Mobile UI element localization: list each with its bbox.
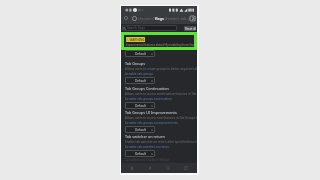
- staticText: Default: [135, 104, 146, 108]
- staticText: Default: [135, 52, 146, 56]
- staticText: Enable tab switcher on return after spec…: [125, 140, 197, 144]
- staticText: Conditional Tabbed Mode: [125, 157, 170, 162]
- button[interactable]: Default: [125, 150, 155, 157]
- button[interactable]: Back: [143, 163, 157, 173]
- button[interactable]: Search: [161, 163, 175, 173]
- staticText: ⚠ WARNING: [126, 38, 145, 42]
- button[interactable]: Recent tabs: [179, 163, 193, 173]
- staticText: /#enable-tab-g: [164, 16, 190, 21]
- staticText: Experimental features ahead! By enabling…: [126, 43, 194, 47]
- staticText: #enable-tab-switcher-on-return: [125, 145, 170, 149]
- staticText: Tab switcher on return: [125, 134, 165, 139]
- staticText: #enable-tab-groups: [125, 72, 153, 76]
- staticText: 2: [192, 17, 194, 21]
- button[interactable]: Reset all: [184, 26, 196, 31]
- staticText: #enable-tab-groups-continuation: [125, 97, 172, 101]
- button[interactable]: Search flags: [122, 25, 177, 31]
- button[interactable]: Switch tabs: [190, 15, 195, 22]
- staticText: Search flags: [127, 26, 146, 30]
- staticText: Default: [135, 128, 146, 132]
- staticText: Default: [135, 152, 146, 156]
- button[interactable]: Back: [123, 15, 129, 21]
- staticText: Allows users to create groups to better …: [125, 67, 197, 71]
- button[interactable]: Default: [125, 77, 155, 84]
- staticText: Tab Groups Continuation: [125, 86, 169, 91]
- staticText: Tab Groups: [125, 61, 145, 66]
- button[interactable]: Default: [125, 126, 155, 133]
- staticText: flags: [155, 16, 164, 21]
- staticText: Allows users to access new features in T…: [125, 116, 197, 120]
- staticText: #enable-tab-groups-ui-improvements: [125, 121, 179, 125]
- button[interactable]: Default: [125, 102, 155, 109]
- button[interactable]: Site information: [131, 15, 137, 21]
- button[interactable]: Home: [125, 163, 139, 173]
- staticText: Tab Groups UI Improvements: [125, 110, 177, 115]
- button[interactable]: Default: [125, 50, 155, 57]
- staticText: chrome://: [138, 16, 155, 21]
- staticText: Allows users to access continuation feat…: [125, 92, 197, 96]
- staticText: Reset all: [185, 27, 196, 31]
- staticText: Default: [135, 79, 146, 83]
